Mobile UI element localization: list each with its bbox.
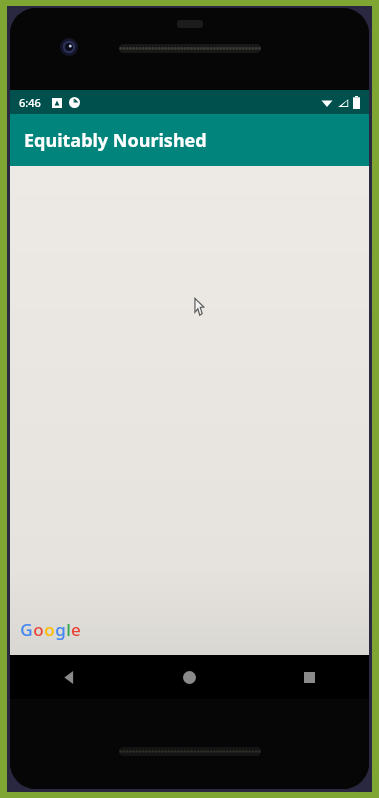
button[interactable]: Back [10,655,129,699]
staticText: o [44,618,55,641]
staticText: e [71,618,81,641]
button[interactable]: Google [20,618,81,641]
staticText: l [66,618,71,641]
staticText: 6:46 [19,95,41,110]
staticText: G [20,618,33,641]
button[interactable]: Home [129,655,249,699]
staticText: Equitably Nourished [24,128,207,153]
button[interactable]: Equitably Nourished [10,114,369,166]
staticText: g [55,618,66,641]
button[interactable]: Recent apps [249,655,369,699]
staticText: o [33,618,44,641]
